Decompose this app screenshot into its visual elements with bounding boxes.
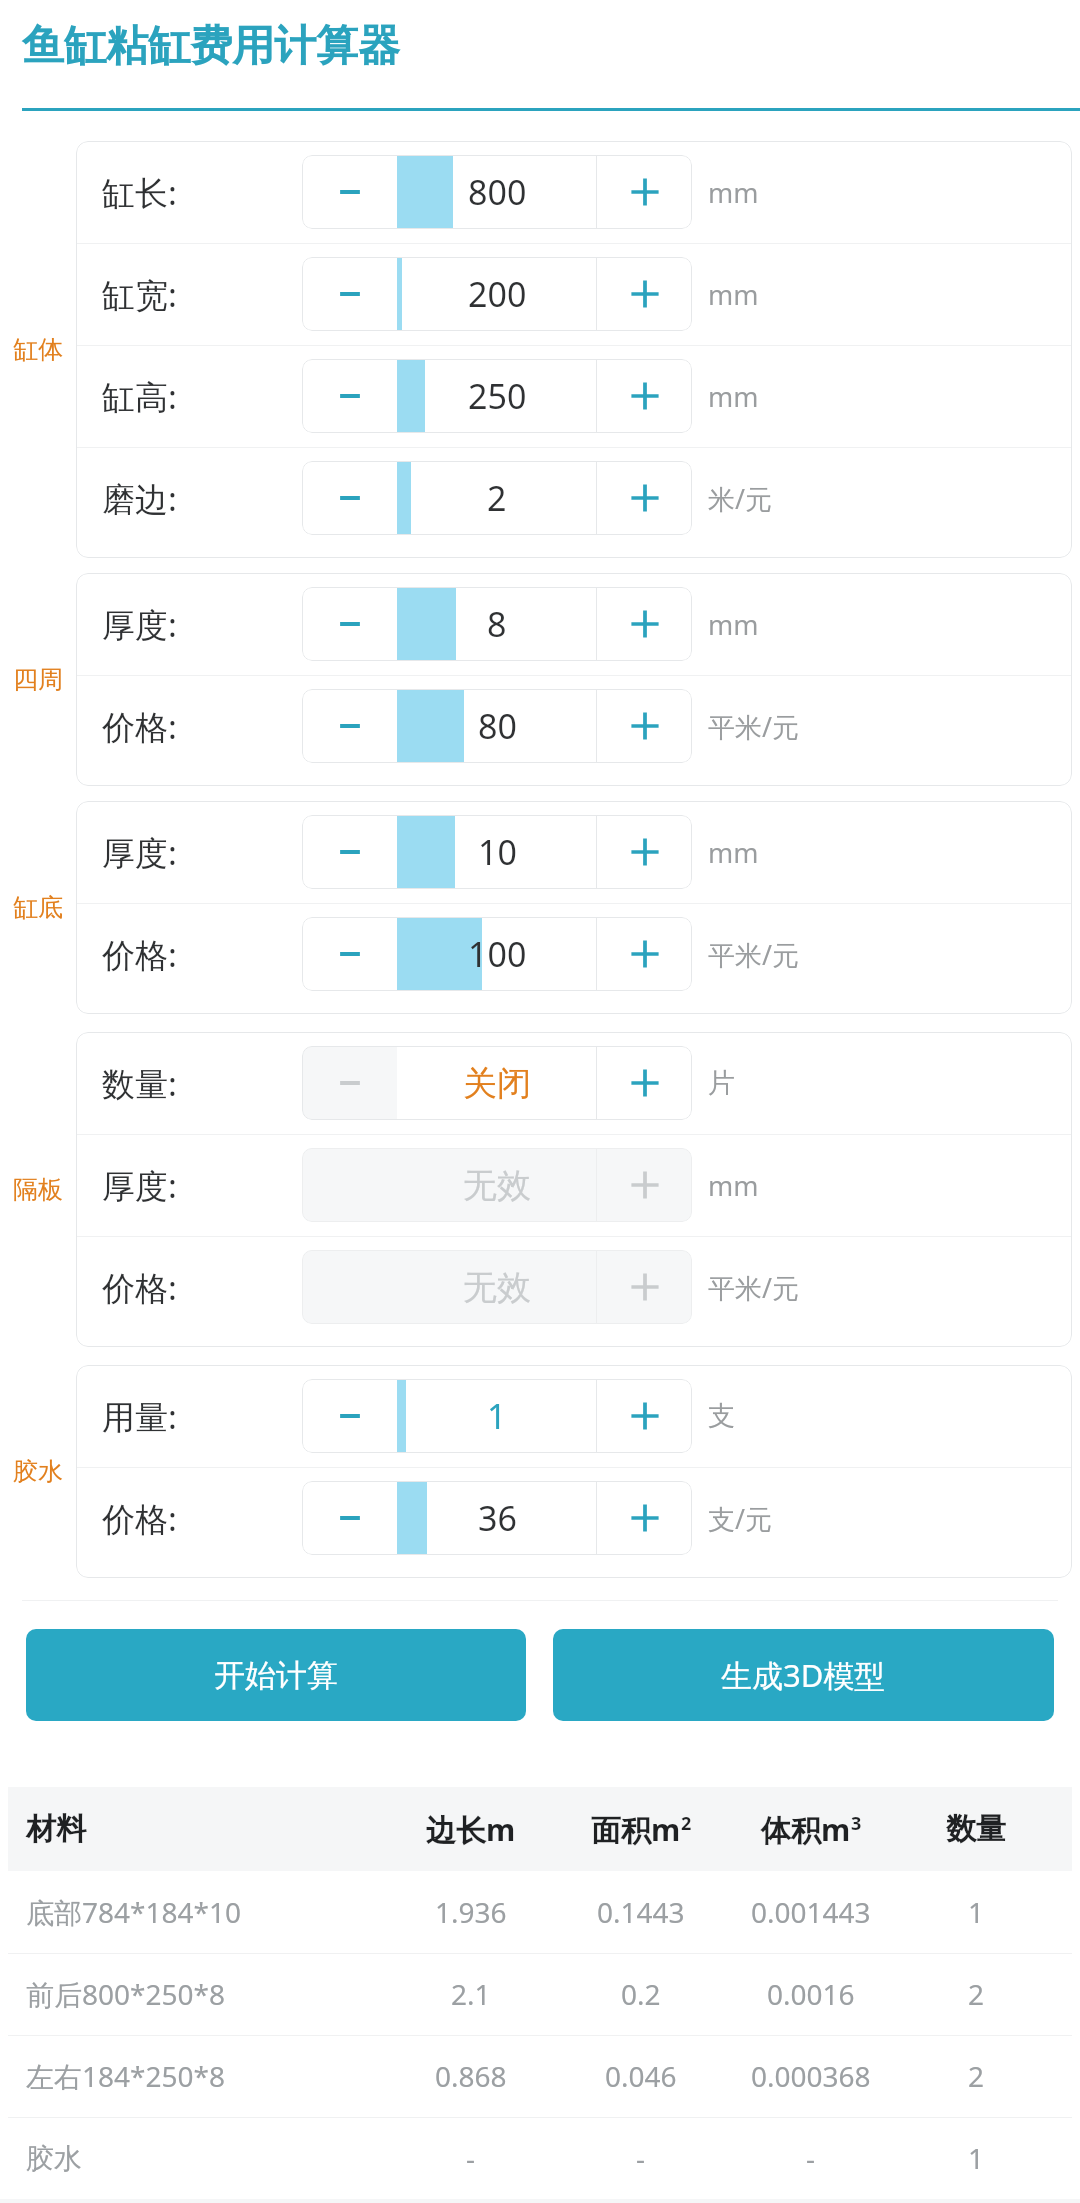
staticText: 前后800*250*8 — [26, 1975, 225, 2013]
staticText: 磨边: — [102, 476, 177, 521]
staticText: 缸底 — [13, 892, 63, 923]
staticText: 平米/元 — [708, 1269, 800, 1306]
button[interactable]: 36 — [397, 1481, 597, 1555]
staticText: 8 — [487, 601, 507, 647]
staticText: 2 — [968, 1975, 985, 2013]
button[interactable]: Decrease 数量: — [302, 1046, 397, 1120]
button[interactable]: Decrease 磨边: — [302, 461, 397, 535]
button[interactable]: 无效 — [397, 1148, 597, 1222]
staticText: 体积m — [761, 1809, 851, 1850]
button[interactable]: Increase 厚度: — [597, 1148, 692, 1222]
button[interactable]: Increase 厚度: — [597, 815, 692, 889]
other: Decrease 缸宽: — [337, 281, 363, 307]
staticText: 价格: — [102, 1265, 177, 1310]
staticText: 厚度: — [102, 1163, 177, 1208]
button[interactable]: Decrease 价格: — [302, 1481, 397, 1555]
staticText: 数量 — [946, 1810, 1006, 1848]
button[interactable]: Increase 用量: — [597, 1379, 692, 1453]
button[interactable]: 2 — [397, 461, 597, 535]
button[interactable]: Increase 价格: — [597, 1250, 692, 1324]
staticText: 缸体 — [13, 334, 63, 365]
staticText: 1 — [968, 2139, 985, 2177]
other: Increase 缸高: — [628, 379, 662, 413]
button[interactable]: 200 — [397, 257, 597, 331]
staticText: 800 — [468, 169, 527, 215]
staticText: 无效 — [463, 1164, 531, 1207]
staticText: 胶水 — [13, 1456, 63, 1487]
staticText: mm — [708, 276, 759, 313]
staticText: 厚度: — [102, 602, 177, 647]
button[interactable]: 100 — [397, 917, 597, 991]
button[interactable]: Increase 厚度: — [597, 587, 692, 661]
staticText: 1 — [968, 1893, 985, 1931]
button[interactable]: Decrease 缸长: — [302, 155, 397, 229]
other: Increase 价格: — [628, 1501, 662, 1535]
staticText: 材料 — [26, 1810, 86, 1848]
other: Decrease 价格: — [337, 1505, 363, 1531]
staticText: 0.000368 — [751, 2057, 871, 2095]
staticText: 生成3D模型 — [721, 1654, 886, 1696]
staticText: 250 — [468, 373, 527, 419]
staticText: 2.1 — [451, 1975, 491, 2013]
button[interactable]: 开始计算 — [26, 1629, 526, 1721]
button[interactable]: 无效 — [397, 1250, 597, 1324]
button[interactable]: Decrease 厚度: — [302, 815, 397, 889]
staticText: 关闭 — [463, 1062, 531, 1105]
staticText: 100 — [468, 931, 527, 977]
button[interactable]: Decrease 价格: — [302, 689, 397, 763]
staticText: 面积m — [591, 1809, 681, 1850]
button[interactable]: Decrease 厚度: — [302, 587, 397, 661]
staticText: mm — [708, 174, 759, 211]
button[interactable]: Increase 价格: — [597, 1481, 692, 1555]
other: Increase 厚度: — [628, 835, 662, 869]
button[interactable]: Increase 磨边: — [597, 461, 692, 535]
other: Increase 缸长: — [628, 175, 662, 209]
button[interactable]: 关闭 — [397, 1046, 597, 1120]
button[interactable]: Increase 价格: — [597, 917, 692, 991]
staticText: 2 — [681, 1811, 692, 1836]
staticText: 200 — [468, 271, 527, 317]
button[interactable]: Decrease 缸高: — [302, 359, 397, 433]
staticText: 3 — [851, 1811, 862, 1836]
other: Decrease 数量: — [337, 1070, 363, 1096]
staticText: mm — [708, 1167, 759, 1204]
other: Increase 数量: — [628, 1066, 662, 1100]
staticText: 80 — [478, 703, 517, 749]
staticText: 隔板 — [13, 1174, 63, 1205]
button[interactable]: 生成3D模型 — [553, 1629, 1054, 1721]
staticText: 胶水 — [26, 2141, 82, 2176]
button[interactable]: Increase 缸长: — [597, 155, 692, 229]
staticText: 缸长: — [102, 170, 177, 215]
staticText: 四周 — [13, 664, 63, 695]
button[interactable]: 800 — [397, 155, 597, 229]
other: Increase 厚度: — [628, 607, 662, 641]
button[interactable]: Increase 价格: — [597, 689, 692, 763]
other: Increase 用量: — [628, 1399, 662, 1433]
staticText: 用量: — [102, 1394, 177, 1439]
staticText: 10 — [478, 829, 517, 875]
staticText: 0.046 — [605, 2057, 677, 2095]
button[interactable]: Increase 缸高: — [597, 359, 692, 433]
button[interactable]: 8 — [397, 587, 597, 661]
button[interactable]: Decrease 用量: — [302, 1379, 397, 1453]
other: Decrease 用量: — [337, 1403, 363, 1429]
staticText: mm — [708, 606, 759, 643]
button[interactable]: Decrease 缸宽: — [302, 257, 397, 331]
button[interactable]: Increase 缸宽: — [597, 257, 692, 331]
button[interactable]: 80 — [397, 689, 597, 763]
staticText: 0.001443 — [751, 1893, 871, 1931]
button[interactable]: 10 — [397, 815, 597, 889]
button[interactable]: Increase 数量: — [597, 1046, 692, 1120]
other: Decrease 厚度: — [337, 611, 363, 637]
staticText: 平米/元 — [708, 936, 800, 973]
button[interactable]: 1 — [397, 1379, 597, 1453]
other: Increase 磨边: — [628, 481, 662, 515]
staticText: 0.2 — [621, 1975, 661, 2013]
staticText: 0.0016 — [767, 1975, 855, 2013]
button[interactable]: 250 — [397, 359, 597, 433]
button[interactable]: Decrease 价格: — [302, 917, 397, 991]
staticText: 0.868 — [435, 2057, 507, 2095]
